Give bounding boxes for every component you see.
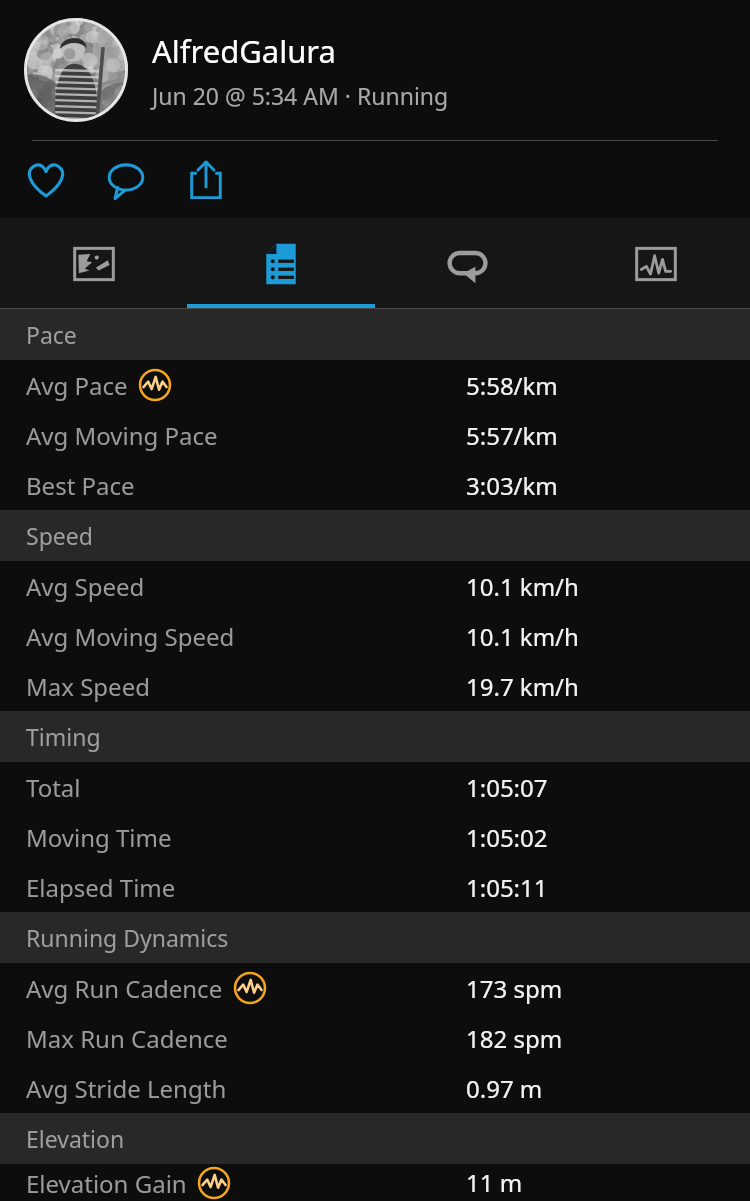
button[interactable]: Elevation Gain xyxy=(0,1164,750,1201)
button[interactable]: Like xyxy=(20,154,72,206)
button[interactable]: Avg Run Cadence xyxy=(0,963,750,1013)
staticText: 1:05:07 xyxy=(466,771,730,804)
button[interactable]: Moving Time xyxy=(0,812,750,862)
staticText: 5:57/km xyxy=(466,419,730,452)
staticText: 19.7 km/h xyxy=(466,670,730,703)
button[interactable]: Share xyxy=(180,154,232,206)
button[interactable]: Charts xyxy=(562,218,750,309)
staticText: 1:05:11 xyxy=(466,871,730,904)
staticText: Best Pace xyxy=(26,469,135,502)
staticText: Avg Stride Length xyxy=(26,1072,227,1105)
staticText: 11 m xyxy=(466,1166,730,1199)
staticText: 5:58/km xyxy=(466,369,730,402)
button[interactable]: Max Run Cadence xyxy=(0,1013,750,1063)
staticText: Speed xyxy=(26,520,93,551)
button[interactable]: Total xyxy=(0,762,750,812)
staticText: Avg Moving Speed xyxy=(26,620,235,653)
staticText: Elevation xyxy=(26,1123,125,1154)
button[interactable]: Details xyxy=(187,218,374,309)
staticText: Avg Pace xyxy=(26,369,128,402)
staticText: 10.1 km/h xyxy=(466,570,730,603)
staticText: AlfredGalura xyxy=(152,30,336,72)
button[interactable]: Avg Moving Speed xyxy=(0,611,750,661)
button[interactable]: Avg Pace xyxy=(0,360,750,410)
button[interactable]: Max Speed xyxy=(0,661,750,711)
staticText: Jun 20 @ 5:34 AM · Running xyxy=(152,80,449,111)
staticText: Max Run Cadence xyxy=(26,1022,228,1055)
button[interactable]: Comment xyxy=(100,154,152,206)
staticText: 3:03/km xyxy=(466,469,730,502)
staticText: 173 spm xyxy=(466,972,730,1005)
staticText: Avg Speed xyxy=(26,570,145,603)
button[interactable]: Best Pace xyxy=(0,460,750,510)
staticText: 10.1 km/h xyxy=(466,620,730,653)
staticText: Running Dynamics xyxy=(26,922,229,953)
button[interactable]: Profile photo xyxy=(0,0,750,140)
staticText: 0.97 m xyxy=(466,1072,730,1105)
staticText: 1:05:02 xyxy=(466,821,730,854)
staticText: Elapsed Time xyxy=(26,871,176,904)
button[interactable]: Avg Speed xyxy=(0,561,750,611)
other: Profile photo xyxy=(24,18,128,122)
button[interactable]: Avg Stride Length xyxy=(0,1063,750,1113)
staticText: Avg Run Cadence xyxy=(26,972,223,1005)
button[interactable]: Avg Moving Pace xyxy=(0,410,750,460)
staticText: 182 spm xyxy=(466,1022,730,1055)
staticText: Elevation Gain xyxy=(26,1167,187,1200)
button[interactable]: Map xyxy=(0,218,187,309)
staticText: Moving Time xyxy=(26,821,172,854)
staticText: Avg Moving Pace xyxy=(26,419,218,452)
staticText: Max Speed xyxy=(26,670,150,703)
button[interactable]: Elapsed Time xyxy=(0,862,750,912)
staticText: Pace xyxy=(26,319,77,350)
staticText: Total xyxy=(26,771,81,804)
button[interactable]: Laps xyxy=(374,218,562,309)
staticText: Timing xyxy=(26,721,101,752)
